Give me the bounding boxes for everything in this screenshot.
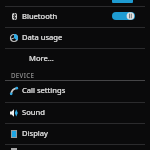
staticText: Sound: [22, 107, 45, 117]
button[interactable]: More...: [0, 48, 150, 69]
staticText: Display: [22, 128, 48, 138]
button[interactable]: Sound: [0, 102, 150, 123]
button[interactable]: Call settings: [0, 80, 150, 101]
staticText: Data usage: [22, 32, 63, 42]
staticText: More...: [29, 53, 54, 63]
button[interactable]: Bluetooth on: [112, 12, 135, 20]
button[interactable]: Display: [0, 123, 150, 144]
button[interactable]: Data usage: [0, 27, 150, 48]
staticText: Call settings: [22, 85, 66, 95]
staticText: DEVICE: [11, 71, 150, 79]
staticText: Bluetooth: [22, 11, 58, 21]
button[interactable]: Bluetooth: [0, 6, 150, 27]
